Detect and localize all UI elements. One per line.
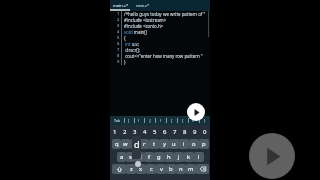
staticText: 8	[117, 53, 120, 59]
staticText: o	[192, 140, 196, 148]
button[interactable]: 2	[120, 125, 130, 138]
staticText: w	[123, 140, 128, 148]
button[interactable]: h	[164, 152, 174, 162]
button[interactable]: t	[149, 139, 159, 149]
button[interactable]: i	[179, 139, 189, 149]
staticText: |	[149, 118, 151, 123]
staticText: 9	[193, 128, 197, 136]
staticText: [	[171, 118, 173, 123]
staticText: t	[153, 140, 156, 148]
staticText: /*hello guys today we write pattern of "	[124, 11, 206, 17]
staticText: p	[202, 140, 206, 148]
staticText: 4	[143, 128, 147, 136]
button[interactable]: l	[194, 152, 204, 162]
staticText: 0	[203, 128, 207, 136]
button[interactable]: 9	[190, 125, 200, 138]
button[interactable]: u	[169, 139, 179, 149]
staticText: cout<<"enter how many row pattern "	[124, 53, 203, 59]
button[interactable]: 0	[200, 125, 210, 138]
button[interactable]: Tab	[110, 116, 124, 125]
staticText: l	[198, 153, 200, 161]
button[interactable]: }	[199, 116, 210, 125]
staticText: z	[130, 165, 133, 173]
staticText: u	[172, 140, 176, 148]
staticText: )	[160, 118, 162, 123]
staticText: 6	[117, 41, 120, 47]
button[interactable]: r	[139, 139, 149, 149]
button[interactable]: new.c*	[132, 0, 154, 11]
staticText: 9	[117, 59, 120, 65]
button[interactable]: |	[144, 116, 155, 125]
staticText: 2	[123, 128, 127, 136]
staticText: void main()	[124, 29, 147, 35]
button[interactable]: Play video	[249, 133, 295, 179]
button[interactable]: w	[121, 139, 130, 149]
button[interactable]: c	[146, 164, 156, 174]
button[interactable]: j	[174, 152, 184, 162]
staticText: }	[204, 118, 206, 123]
button[interactable]: (	[134, 116, 144, 125]
button[interactable]: 8	[180, 125, 190, 138]
staticText: =	[192, 118, 195, 123]
button[interactable]: z	[126, 164, 136, 174]
staticText: h	[167, 153, 171, 161]
button[interactable]: b	[166, 164, 176, 174]
button[interactable]: p	[199, 139, 209, 149]
staticText: g	[157, 153, 161, 161]
button[interactable]: x	[136, 164, 146, 174]
button[interactable]: main.c*	[110, 0, 132, 11]
staticText: a	[120, 153, 124, 161]
staticText: d	[134, 138, 140, 150]
button[interactable]: Play	[187, 103, 205, 121]
button[interactable]: o	[189, 139, 199, 149]
staticText: b	[169, 165, 173, 173]
button[interactable]: d	[135, 152, 144, 162]
staticText: v	[160, 165, 163, 173]
staticText: y	[163, 140, 166, 148]
button[interactable]: Shift	[112, 164, 126, 174]
button[interactable]: 3	[130, 125, 140, 138]
button[interactable]: 5	[150, 125, 160, 138]
staticText: i	[183, 140, 185, 148]
button[interactable]: Backspace	[196, 164, 209, 174]
staticText: #include <conio.h>	[124, 23, 164, 29]
staticText: clrscr();	[124, 47, 141, 53]
button[interactable]: [	[166, 116, 177, 125]
staticText: Tab	[114, 118, 120, 123]
button[interactable]: 1	[110, 125, 120, 138]
staticText: }	[124, 59, 126, 65]
staticText: #include <iostream>	[124, 17, 167, 23]
staticText: 7	[173, 128, 177, 136]
button[interactable]: )	[155, 116, 166, 125]
button[interactable]: v	[156, 164, 166, 174]
button[interactable]: q	[112, 139, 121, 149]
staticText: (	[138, 118, 140, 123]
staticText: x	[139, 165, 143, 173]
staticText: n	[179, 165, 183, 173]
button[interactable]: n	[176, 164, 186, 174]
staticText: 1	[117, 11, 120, 17]
button[interactable]: e	[130, 139, 139, 149]
button[interactable]: {	[177, 116, 188, 125]
button[interactable]: =	[188, 116, 199, 125]
button[interactable]: g	[154, 152, 164, 162]
button[interactable]: s	[126, 152, 135, 162]
staticText: 1	[113, 128, 117, 136]
button[interactable]: a	[117, 152, 126, 162]
button[interactable]: 4	[140, 125, 150, 138]
button[interactable]: 6	[160, 125, 170, 138]
button[interactable]: m	[186, 164, 196, 174]
button[interactable]: 7	[170, 125, 180, 138]
staticText: 5	[153, 128, 157, 136]
button[interactable]: f	[144, 152, 154, 162]
staticText: q	[115, 140, 119, 148]
button[interactable]: y	[159, 139, 169, 149]
button[interactable]: k	[184, 152, 194, 162]
button[interactable]: ]	[124, 116, 134, 125]
staticText: e	[133, 140, 137, 148]
staticText: {	[124, 35, 126, 41]
staticText: new.c*	[136, 3, 150, 9]
staticText: 3	[133, 128, 137, 136]
staticText: j	[178, 153, 180, 161]
staticText: ]	[128, 118, 130, 123]
